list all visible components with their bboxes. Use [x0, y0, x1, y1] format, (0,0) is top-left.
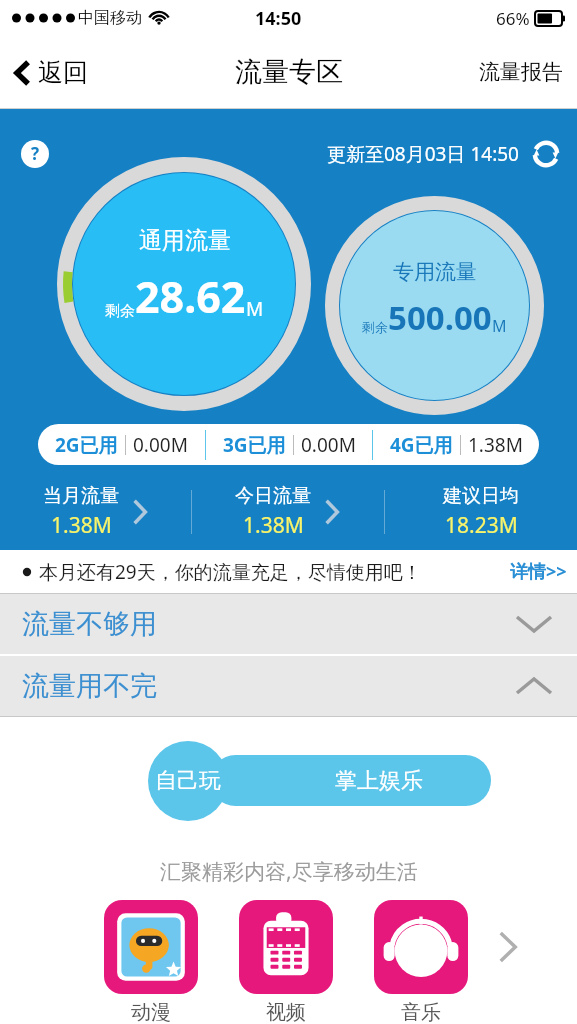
staticText: 4G已用	[390, 432, 453, 458]
staticText: ?	[31, 142, 40, 165]
staticText: 剩余	[362, 319, 388, 335]
staticText: 视频	[266, 1000, 306, 1024]
button[interactable]: 本月还有29天，你的流量充足，尽情使用吧！	[0, 550, 577, 593]
staticText: 今日流量	[235, 484, 311, 508]
staticText: 流量用不完	[22, 669, 157, 703]
button[interactable]: 建议日均	[385, 484, 577, 540]
staticText: 流量不够用	[22, 607, 157, 641]
button[interactable]: 动漫	[104, 900, 198, 1024]
staticText: M	[246, 296, 264, 322]
staticText: 通用流量	[139, 226, 231, 255]
staticText: 18.23M	[445, 511, 518, 540]
button[interactable]: 音乐	[374, 900, 468, 1024]
staticText: 动漫	[131, 1000, 171, 1024]
staticText: 流量专区	[235, 55, 343, 89]
staticText: 1.38M	[51, 511, 112, 540]
staticText: 建议日均	[443, 484, 519, 508]
button[interactable]: Refresh	[529, 137, 563, 171]
staticText: M	[492, 315, 507, 337]
staticText: 0.00M	[133, 432, 188, 458]
button[interactable]: 流量报告	[465, 49, 577, 95]
button[interactable]: 掌上娱乐	[210, 755, 491, 806]
staticText: 掌上娱乐	[335, 767, 423, 795]
button[interactable]: 视频	[239, 900, 333, 1024]
staticText: 28.62	[135, 267, 246, 326]
staticText: 音乐	[401, 1000, 441, 1024]
button[interactable]: 流量不够用	[0, 594, 577, 654]
button[interactable]: 返回	[0, 49, 102, 96]
button[interactable]: 2G已用	[38, 424, 539, 465]
button[interactable]: Help	[20, 139, 50, 169]
button[interactable]: 今日流量	[192, 484, 384, 540]
staticText: 1.38M	[243, 511, 304, 540]
button[interactable]: 当月流量	[0, 484, 191, 540]
staticText: 500.00	[388, 295, 492, 340]
staticText: 剩余	[105, 302, 135, 321]
staticText: 本月还有29天，你的流量充足，尽情使用吧！	[39, 559, 422, 585]
staticText: 1.38M	[468, 432, 523, 458]
staticText: 0.00M	[301, 432, 356, 458]
staticText: 2G已用	[55, 432, 118, 458]
staticText: 流量报告	[479, 59, 563, 85]
staticText: 专用流量	[393, 259, 477, 285]
staticText: 66%	[496, 7, 530, 30]
staticText: 3G已用	[223, 432, 286, 458]
button[interactable]: 流量用不完	[0, 656, 577, 716]
staticText: 14:50	[255, 6, 302, 31]
staticText: 汇聚精彩内容,尽享移动生活	[160, 857, 418, 886]
staticText: 返回	[38, 57, 88, 88]
staticText: 更新至08月03日 14:50	[327, 141, 519, 167]
staticText: 当月流量	[43, 484, 119, 508]
staticText: 详情>>	[510, 559, 567, 584]
staticText: 中国移动	[78, 8, 142, 28]
button[interactable]: 自己玩	[148, 741, 228, 821]
staticText: 自己玩	[155, 767, 221, 795]
